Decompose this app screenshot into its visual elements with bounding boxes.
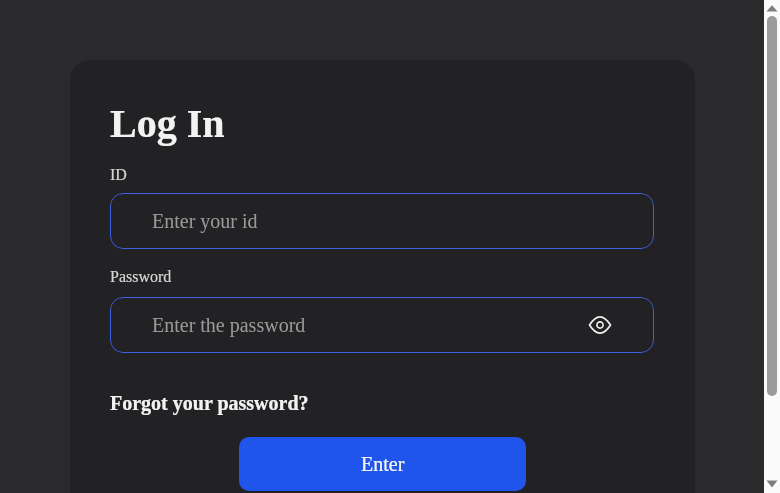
staticText: Password [110,268,172,286]
staticText: ID [110,166,127,184]
button[interactable]: Enter [239,437,526,491]
button[interactable]: Forgot your password? [110,392,309,414]
staticText: Enter the password [152,314,306,336]
staticText: Enter your id [152,210,258,232]
button[interactable]: Enter the password [110,297,654,353]
staticText: Enter [361,453,405,475]
button[interactable] [588,313,612,337]
staticText: Log In [110,101,225,145]
button[interactable]: Enter your id [110,193,654,249]
